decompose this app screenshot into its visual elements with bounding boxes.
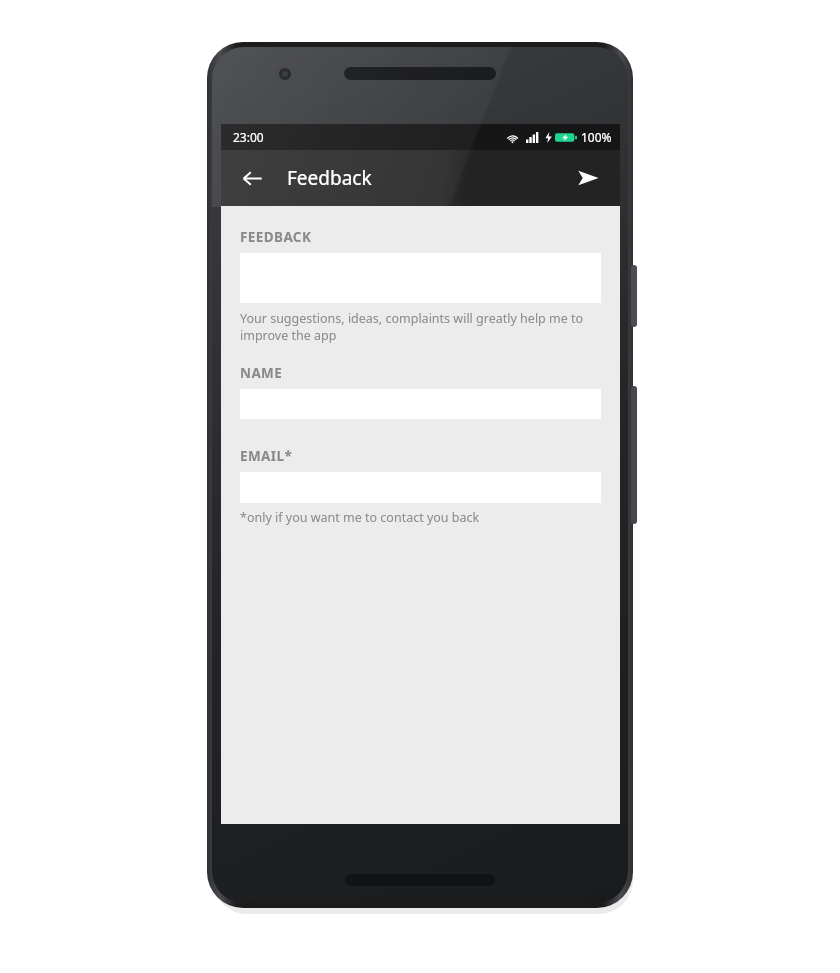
staticText: *only if you want me to contact you back <box>240 509 480 526</box>
staticText: Your suggestions, ideas, complaints will… <box>240 310 601 343</box>
staticText: EMAIL* <box>240 447 293 465</box>
button[interactable]: Send <box>570 160 606 196</box>
staticText: Feedback <box>287 165 372 191</box>
staticText: FEEDBACK <box>240 228 312 246</box>
staticText: 23:00 <box>233 129 264 145</box>
staticText: NAME <box>240 364 283 382</box>
button[interactable]: Back <box>235 161 269 195</box>
staticText: 100% <box>581 129 612 145</box>
